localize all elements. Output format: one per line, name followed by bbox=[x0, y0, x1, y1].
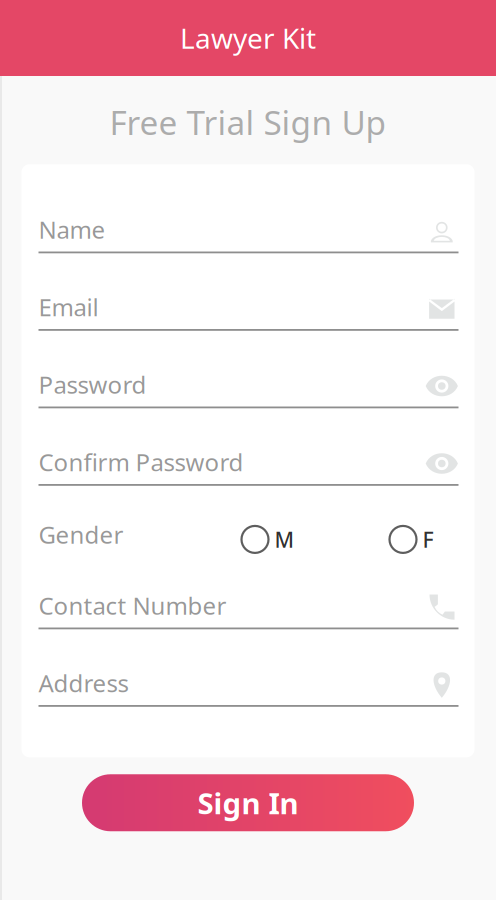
button[interactable]: Password bbox=[38, 362, 458, 408]
staticText: Email bbox=[38, 291, 98, 323]
button[interactable]: Confirm Password bbox=[38, 440, 458, 486]
staticText: Confirm Password bbox=[38, 446, 243, 478]
button[interactable]: F bbox=[389, 520, 433, 548]
button[interactable]: M bbox=[241, 520, 294, 548]
staticText: Password bbox=[38, 369, 146, 400]
staticText: Gender bbox=[38, 518, 123, 550]
staticText: F bbox=[422, 525, 433, 553]
button[interactable]: Name bbox=[38, 207, 458, 253]
staticText: Address bbox=[38, 667, 128, 699]
button[interactable]: Contact Number bbox=[38, 583, 458, 629]
button[interactable]: Sign In bbox=[82, 774, 414, 831]
button[interactable]: Email bbox=[38, 285, 458, 331]
staticText: Name bbox=[38, 214, 105, 245]
staticText: Sign In bbox=[197, 783, 298, 822]
staticText: Free Trial Sign Up bbox=[109, 100, 386, 144]
staticText: Lawyer Kit bbox=[180, 19, 316, 57]
button[interactable]: Address bbox=[38, 661, 458, 707]
staticText: Contact Number bbox=[38, 590, 226, 621]
staticText: M bbox=[274, 525, 294, 553]
